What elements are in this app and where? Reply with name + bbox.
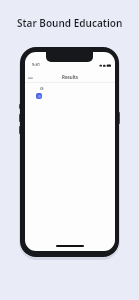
staticText: 9:41 [32,62,40,67]
staticText: Results [25,74,115,80]
button[interactable] [34,85,46,100]
staticText: Star Bound Education [17,16,123,30]
button[interactable] [36,93,42,99]
